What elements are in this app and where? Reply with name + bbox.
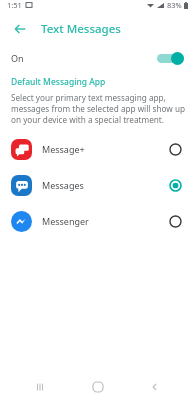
staticText: 1:51 — [7, 0, 22, 10]
button[interactable]: Messages — [0, 167, 195, 203]
staticText: Select your primary text messaging app, … — [11, 92, 186, 125]
staticText: Message+ — [42, 143, 85, 155]
button[interactable]: Recents — [23, 374, 57, 400]
button[interactable]: Back — [138, 374, 172, 400]
staticText: On — [11, 52, 24, 64]
button[interactable]: Message+ — [0, 131, 195, 167]
staticText: Default Messaging App — [11, 76, 106, 88]
button[interactable]: On — [0, 43, 195, 73]
button[interactable]: Back — [9, 18, 31, 40]
staticText: Text Messages — [41, 21, 121, 37]
button[interactable]: Messenger — [0, 203, 195, 239]
staticText: 83% — [167, 0, 182, 10]
button[interactable]: Home — [81, 374, 115, 400]
staticText: Messenger — [42, 215, 89, 227]
staticText: Messages — [42, 179, 84, 191]
